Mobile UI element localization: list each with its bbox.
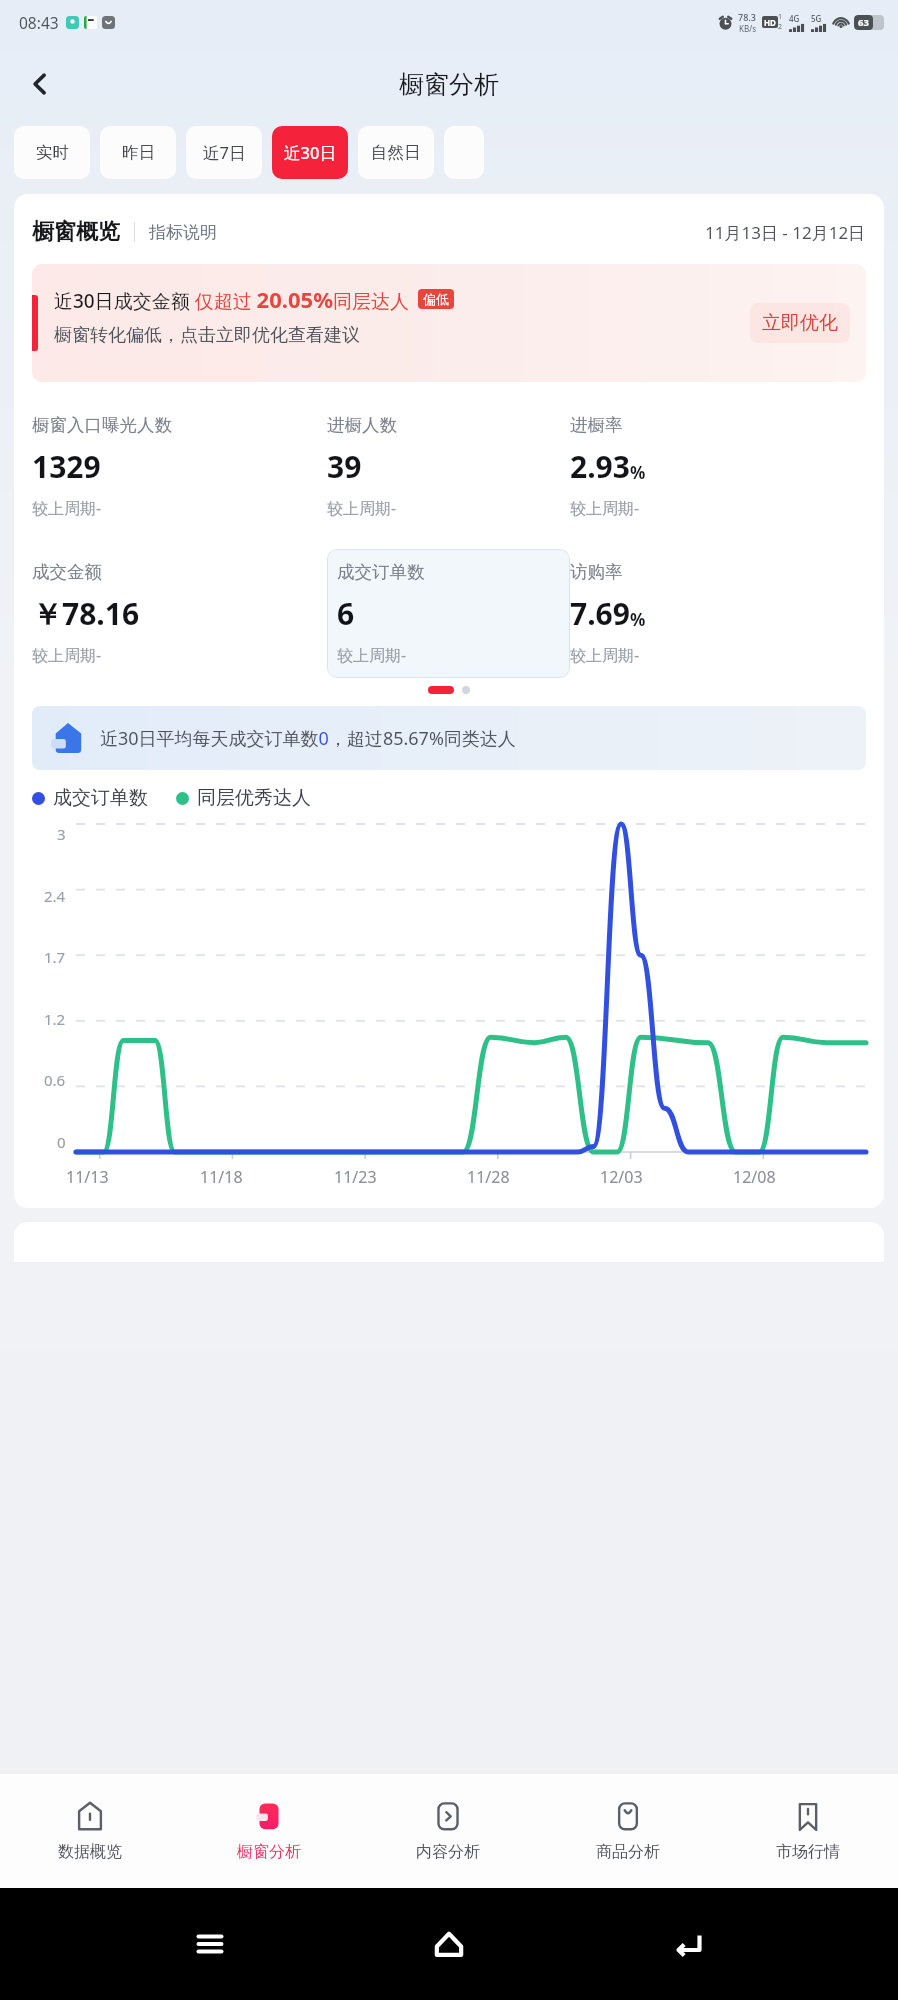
staticText: 6	[337, 593, 355, 634]
staticText: KB/s	[739, 23, 756, 34]
button[interactable]: 近30日成交金额 仅超过 20.05%同层达人	[32, 264, 866, 382]
button[interactable]: 实时	[14, 126, 90, 179]
staticText: 橱窗转化偏低，点击立即优化查看建议	[54, 324, 360, 347]
staticText: 偏低	[423, 291, 449, 307]
staticText: 橱窗概览	[32, 218, 120, 246]
button[interactable]: 内容分析	[358, 1774, 538, 1888]
button[interactable]: 近7日	[186, 126, 262, 179]
staticText: 08:43	[19, 12, 59, 33]
staticText: 指标说明	[149, 222, 217, 243]
staticText: 数据概览	[58, 1842, 122, 1862]
staticText: 4G	[789, 13, 800, 24]
button[interactable]: 进橱率	[570, 414, 866, 519]
button[interactable]: 进橱人数	[327, 414, 570, 519]
staticText: %	[630, 608, 646, 631]
staticText: 39	[327, 446, 362, 487]
staticText: 成交订单数	[53, 786, 148, 810]
button[interactable]: 橱窗分析	[179, 1774, 358, 1888]
button[interactable]: 商品分析	[538, 1774, 718, 1888]
staticText: 橱窗分析	[237, 1842, 301, 1862]
staticText: 7.69	[570, 593, 630, 634]
staticText: 5G	[811, 13, 822, 24]
staticText: 进橱率	[570, 414, 623, 436]
staticText: 橱窗分析	[399, 69, 499, 100]
button[interactable]: 成交金额	[32, 561, 327, 666]
button[interactable]: Recents	[180, 1914, 240, 1974]
staticText: 11月13日 - 12月12日	[705, 221, 866, 244]
staticText: 2.93	[570, 446, 630, 487]
staticText: 立即优化	[762, 311, 838, 335]
staticText: 近30日成交金额 仅超过 20.05%同层达人	[54, 284, 414, 314]
staticText: 实时	[36, 142, 69, 163]
staticText: 0.6	[44, 1070, 66, 1090]
staticText: 11/13	[66, 1166, 109, 1188]
staticText: 内容分析	[416, 1842, 480, 1862]
staticText: 1329	[32, 446, 101, 487]
staticText: 昨日	[122, 142, 155, 163]
button[interactable]: 立即优化	[750, 303, 850, 343]
staticText: 访购率	[570, 561, 623, 583]
staticText: 较上周期-	[570, 644, 640, 666]
button[interactable]: 橱窗入口曝光人数	[32, 414, 327, 519]
button[interactable]: 数据概览	[0, 1774, 179, 1888]
staticText: 较上周期-	[32, 644, 102, 666]
staticText: 商品分析	[596, 1842, 660, 1862]
staticText: 12/08	[733, 1166, 776, 1188]
button[interactable]	[444, 126, 484, 179]
staticText: 较上周期-	[32, 497, 102, 519]
button[interactable]: 指标说明	[149, 222, 217, 243]
button[interactable]: Home	[419, 1914, 479, 1974]
staticText: 近30日平均每天成交订单数0，超过85.67%同类达人	[100, 726, 516, 751]
button[interactable]: 访购率	[570, 561, 866, 666]
staticText: ￥78.16	[32, 593, 140, 634]
staticText: 近30日	[284, 141, 336, 164]
staticText: 11/28	[467, 1166, 510, 1188]
staticText: 12/03	[600, 1166, 643, 1188]
staticText: 2	[778, 22, 783, 32]
staticText: 同层优秀达人	[197, 786, 311, 810]
staticText: 市场行情	[776, 1842, 840, 1862]
staticText: 1	[778, 12, 783, 22]
staticText: 63	[858, 16, 869, 29]
staticText: 2.4	[44, 886, 66, 906]
staticText: 较上周期-	[570, 497, 640, 519]
button[interactable]: 近30日	[272, 126, 348, 179]
button[interactable]: 昨日	[100, 126, 176, 179]
staticText: 1.7	[44, 947, 66, 967]
staticText: 较上周期-	[337, 644, 407, 666]
staticText: 78.3	[738, 11, 756, 23]
staticText: 橱窗入口曝光人数	[32, 414, 172, 436]
staticText: %	[630, 461, 646, 484]
button[interactable]: 自然日	[358, 126, 434, 179]
staticText: 3	[57, 824, 66, 844]
button[interactable]: Back	[659, 1914, 719, 1974]
staticText: 较上周期-	[327, 497, 397, 519]
button[interactable]: 市场行情	[718, 1774, 898, 1888]
staticText: 11/23	[334, 1166, 377, 1188]
staticText: 1.2	[44, 1009, 66, 1029]
staticText: 近7日	[203, 141, 246, 164]
staticText: 自然日	[371, 142, 421, 163]
staticText: 11/18	[200, 1166, 243, 1188]
button[interactable]: 成交订单数	[337, 561, 560, 666]
staticText: 成交订单数	[337, 561, 425, 583]
staticText: 成交金额	[32, 561, 102, 583]
staticText: HD	[764, 17, 776, 28]
button[interactable]: Back	[14, 58, 66, 110]
staticText: 0	[57, 1132, 66, 1152]
staticText: 进橱人数	[327, 414, 397, 436]
